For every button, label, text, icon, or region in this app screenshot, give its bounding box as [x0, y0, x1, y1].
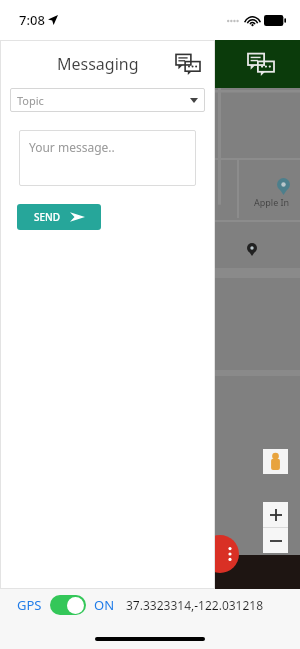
button[interactable]: Your message.. [19, 130, 196, 186]
button[interactable]: Messages [173, 49, 203, 79]
staticText: GPS [17, 596, 42, 614]
button[interactable]: Topic [10, 88, 205, 112]
button[interactable]: SEND [17, 204, 101, 230]
staticText: Messaging [57, 53, 139, 75]
staticText: Apple In [254, 196, 290, 208]
button[interactable]: More options [201, 535, 239, 573]
staticText: 7:08 [19, 11, 45, 29]
staticText: Your message.. [29, 139, 115, 155]
staticText: Topic [17, 93, 44, 108]
button[interactable]: Street View [263, 449, 288, 474]
button[interactable]: Zoom in [263, 502, 288, 527]
button[interactable]: Zoom out [263, 528, 288, 553]
staticText: oogle [219, 557, 241, 568]
staticText: 37.3323314,-122.031218 [126, 597, 264, 613]
staticText: ON [94, 596, 115, 614]
staticText: SEND [34, 210, 61, 224]
button[interactable]: GPS toggle [50, 595, 86, 615]
button[interactable]: Messaging [215, 40, 300, 88]
